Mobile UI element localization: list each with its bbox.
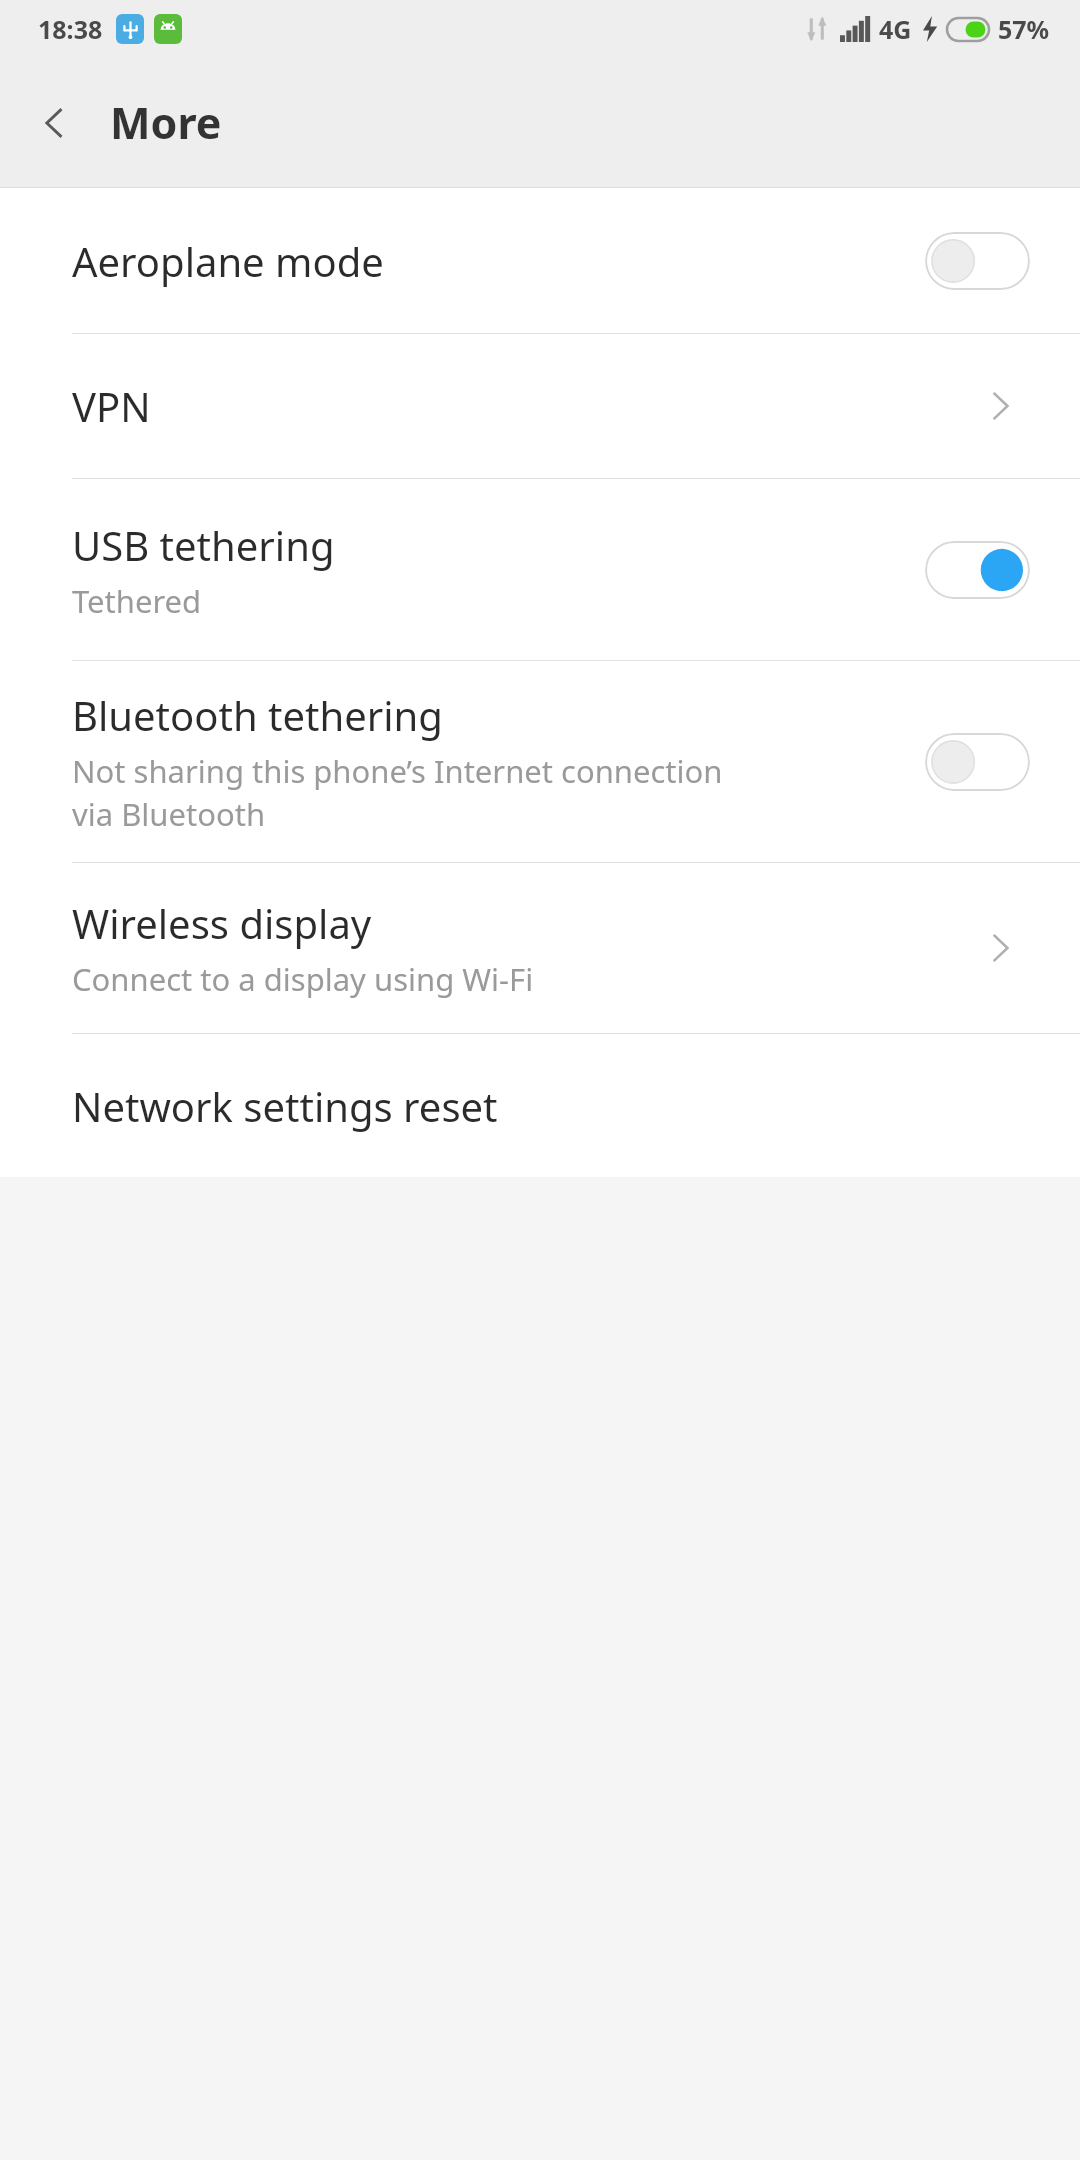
- staticText: Aeroplane mode: [72, 234, 384, 288]
- staticText: USB tethering: [72, 518, 335, 572]
- staticText: 18:38: [38, 12, 103, 46]
- button[interactable]: Toggle off: [925, 733, 1030, 791]
- button[interactable]: Wireless display: [0, 863, 1080, 1033]
- button[interactable]: Open: [970, 918, 1030, 978]
- button[interactable]: USB tethering: [0, 479, 1080, 660]
- staticText: Tethered: [72, 580, 742, 622]
- staticText: Wireless display: [72, 896, 372, 950]
- staticText: Bluetooth tethering: [72, 688, 443, 742]
- button[interactable]: Network settings reset: [0, 1034, 1080, 1177]
- staticText: More: [110, 93, 222, 152]
- button[interactable]: Back: [22, 90, 88, 156]
- button[interactable]: Bluetooth tethering: [0, 661, 1080, 862]
- button[interactable]: Toggle on: [925, 541, 1030, 599]
- button[interactable]: Aeroplane mode: [0, 188, 1080, 333]
- button[interactable]: Open: [970, 376, 1030, 436]
- staticText: Not sharing this phone’s Internet connec…: [72, 750, 742, 835]
- staticText: 57%: [998, 12, 1050, 46]
- button[interactable]: VPN: [0, 334, 1080, 478]
- staticText: 4G: [879, 12, 912, 46]
- button[interactable]: Toggle off: [925, 232, 1030, 290]
- staticText: Network settings reset: [72, 1079, 498, 1133]
- staticText: VPN: [72, 379, 151, 433]
- staticText: Connect to a display using Wi-Fi: [72, 958, 778, 1000]
